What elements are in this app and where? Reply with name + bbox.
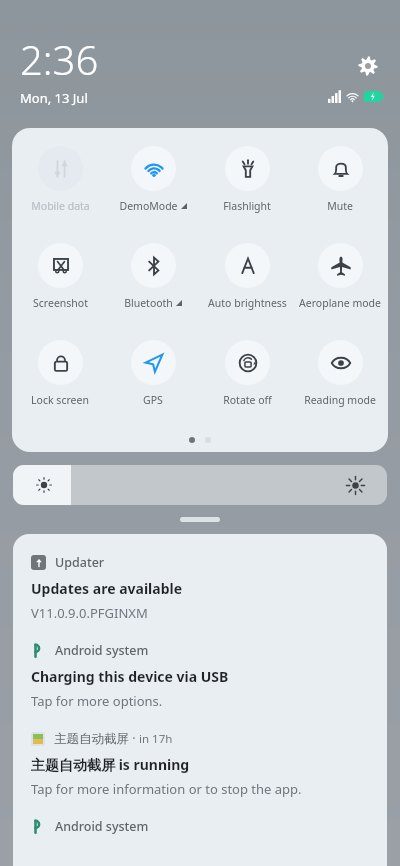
button[interactable]: Mute [294, 146, 386, 213]
staticText: Android system [55, 818, 149, 835]
staticText: Auto brightness [208, 296, 287, 310]
button[interactable]: Lock screen [14, 340, 106, 407]
staticText: 主题自动截屏 [54, 731, 129, 747]
button[interactable]: Android system [31, 818, 371, 835]
button[interactable]: DemoMode [107, 146, 199, 213]
staticText: GPS [143, 393, 163, 407]
button[interactable]: Updater [31, 554, 371, 622]
staticText: DemoMode [119, 199, 178, 213]
staticText: Updater [55, 554, 105, 571]
button[interactable]: Auto brightness [201, 243, 293, 310]
button[interactable]: Settings [352, 50, 384, 82]
staticText: Updates are available [31, 579, 183, 598]
button[interactable]: GPS [107, 340, 199, 407]
staticText: 主题自动截屏 is running [31, 755, 190, 774]
staticText: Android system [55, 642, 149, 659]
staticText: Lock screen [31, 393, 89, 407]
staticText: Screenshot [33, 296, 88, 310]
button[interactable]: Brightness [13, 465, 387, 505]
button[interactable]: Mobile data [14, 146, 106, 213]
staticText: Tap for more information or to stop the … [31, 780, 302, 798]
staticText: Bluetooth [124, 296, 173, 310]
staticText: Mute [327, 199, 353, 213]
button[interactable]: Android system [31, 642, 371, 710]
button[interactable]: 主题自动截屏 [31, 730, 371, 798]
button[interactable]: Flashlight [201, 146, 293, 213]
staticText: in 17h [139, 731, 173, 747]
button[interactable]: Aeroplane mode [294, 243, 386, 310]
staticText: · [129, 730, 139, 747]
staticText: Mobile data [31, 199, 90, 213]
staticText: 2:36 [20, 32, 99, 86]
button[interactable]: Bluetooth [107, 243, 199, 310]
staticText: Flashlight [223, 199, 271, 213]
button[interactable]: Rotate off [201, 340, 293, 407]
staticText: Rotate off [223, 393, 272, 407]
button[interactable]: Screenshot [14, 243, 106, 310]
staticText: V11.0.9.0.PFGINXM [31, 604, 148, 622]
staticText: Mon, 13 Jul [20, 89, 88, 107]
button[interactable]: Reading mode [294, 340, 386, 407]
staticText: Charging this device via USB [31, 667, 229, 686]
staticText: Aeroplane mode [299, 296, 381, 310]
staticText: Reading mode [304, 393, 376, 407]
staticText: Tap for more options. [31, 692, 163, 710]
